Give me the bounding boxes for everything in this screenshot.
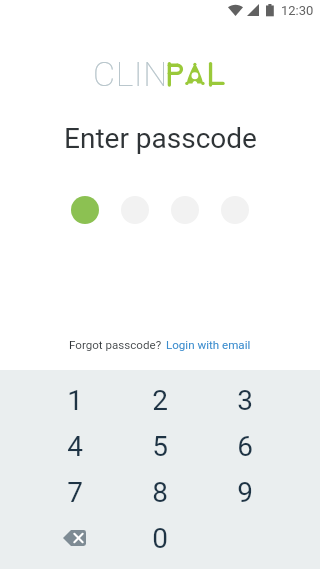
button[interactable]: 0 bbox=[117, 515, 202, 561]
staticText: 3 bbox=[237, 384, 253, 417]
staticText: Enter passcode bbox=[64, 122, 257, 155]
staticText: 9 bbox=[237, 476, 253, 509]
button[interactable]: 4 bbox=[32, 423, 117, 469]
button[interactable]: Backspace bbox=[32, 515, 117, 561]
button[interactable]: 7 bbox=[32, 469, 117, 515]
staticText: 2 bbox=[152, 384, 168, 417]
staticText: 6 bbox=[237, 430, 253, 463]
button[interactable]: 9 bbox=[202, 469, 287, 515]
staticText: 1 bbox=[67, 384, 83, 417]
staticText: CLIN bbox=[93, 54, 168, 94]
button[interactable]: Login with email bbox=[166, 338, 251, 352]
staticText: Forgot passcode? bbox=[69, 338, 162, 352]
button[interactable]: 5 bbox=[117, 423, 202, 469]
staticText: 7 bbox=[67, 476, 83, 509]
staticText: 0 bbox=[152, 522, 168, 555]
staticText: 8 bbox=[152, 476, 168, 509]
button[interactable]: 1 bbox=[32, 377, 117, 423]
staticText: 5 bbox=[152, 430, 168, 463]
button[interactable]: 8 bbox=[117, 469, 202, 515]
staticText: 12:30 bbox=[281, 3, 314, 18]
staticText: 4 bbox=[67, 430, 83, 463]
button[interactable]: 3 bbox=[202, 377, 287, 423]
staticText: Login with email bbox=[166, 338, 251, 352]
button[interactable]: 6 bbox=[202, 423, 287, 469]
button[interactable]: 2 bbox=[117, 377, 202, 423]
